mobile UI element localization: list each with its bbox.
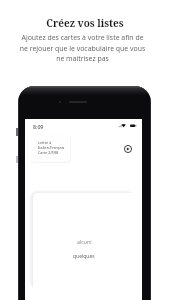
button[interactable]: Lettre à bbox=[31, 134, 70, 161]
button[interactable]: Play bbox=[121, 142, 135, 156]
staticText: Italien-Français bbox=[38, 145, 65, 150]
staticText: 8:09 bbox=[33, 123, 44, 130]
staticText: quelques bbox=[73, 253, 95, 260]
staticText: Lettre à bbox=[38, 140, 52, 145]
staticText: Ajoutez des cartes à votre liste afin de… bbox=[0, 33, 167, 63]
staticText: Créez vos listes bbox=[46, 16, 124, 30]
staticText: alcuni bbox=[77, 238, 92, 245]
button[interactable]: alcuni bbox=[33, 193, 138, 291]
staticText: Carte 2/598 bbox=[38, 150, 59, 155]
